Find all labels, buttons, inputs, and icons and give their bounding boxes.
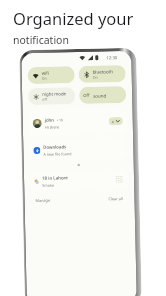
staticText: Hi there bbox=[45, 124, 60, 130]
staticText: Smoke bbox=[42, 183, 54, 188]
button[interactable]: Clear all bbox=[106, 195, 126, 202]
staticText: 4 bbox=[112, 119, 114, 124]
staticText: john bbox=[45, 117, 55, 123]
button[interactable]: bluetooth bbox=[78, 65, 126, 83]
staticText: • 1h bbox=[57, 117, 64, 123]
staticText: bluetooth bbox=[92, 68, 114, 75]
staticText: notification bbox=[13, 33, 69, 47]
button[interactable]: 18 in Lahore bbox=[30, 169, 128, 192]
staticText: Downloads bbox=[43, 143, 66, 150]
staticText: wifi bbox=[42, 70, 50, 76]
button[interactable]: john bbox=[28, 108, 127, 136]
staticText: Clear all bbox=[108, 196, 123, 201]
staticText: off bbox=[42, 97, 47, 102]
staticText: On bbox=[93, 75, 99, 80]
staticText: Off bbox=[83, 93, 90, 99]
staticText: sound bbox=[93, 92, 106, 99]
staticText: Manage bbox=[35, 198, 51, 203]
button[interactable]: Off bbox=[79, 86, 126, 104]
staticText: 18 in Lahore bbox=[42, 174, 68, 181]
staticText: night mode bbox=[42, 90, 66, 97]
staticText: A new file found bbox=[43, 151, 71, 157]
button[interactable]: wifi bbox=[27, 66, 75, 84]
button[interactable]: night mode bbox=[28, 87, 75, 105]
staticText: On bbox=[42, 76, 48, 81]
staticText: Organized your bbox=[13, 7, 134, 29]
staticText: 12:30 bbox=[106, 54, 117, 60]
button[interactable]: Expand notification bbox=[109, 117, 123, 125]
button[interactable]: Manage bbox=[33, 197, 53, 204]
button[interactable]: Downloads bbox=[29, 137, 128, 161]
